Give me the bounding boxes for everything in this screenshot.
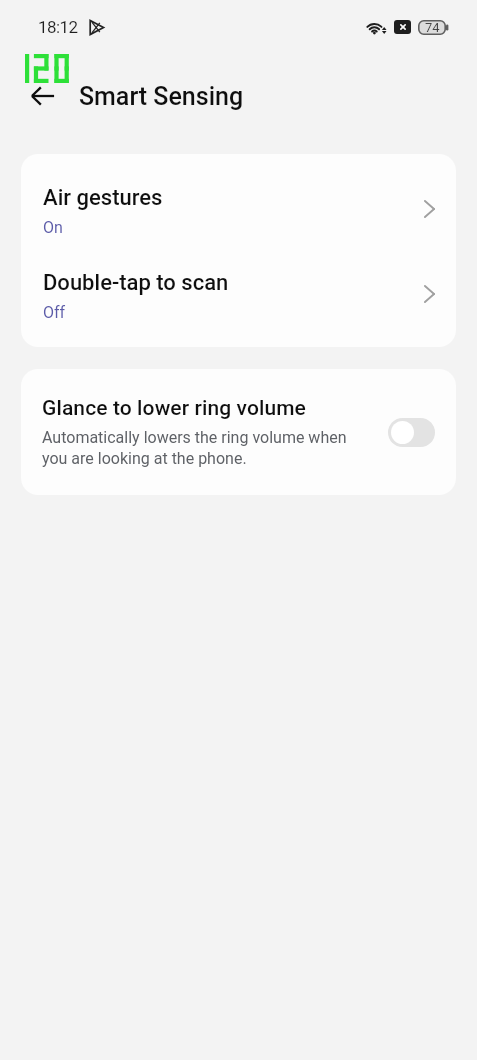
button[interactable]: Air gestures xyxy=(21,154,456,239)
staticText: On xyxy=(43,218,63,237)
button[interactable]: Back xyxy=(22,75,64,117)
staticText: Air gestures xyxy=(43,185,163,211)
staticText: Glance to lower ring volume xyxy=(42,396,306,421)
staticText: Smart Sensing xyxy=(79,82,244,111)
staticText: 74 xyxy=(425,20,440,35)
button[interactable]: Glance to lower ring volume xyxy=(21,369,456,495)
button[interactable]: Glance to lower ring volume toggle xyxy=(388,418,435,447)
button[interactable]: Double-tap to scan xyxy=(21,239,456,347)
staticText: Off xyxy=(43,303,66,322)
staticText: Double-tap to scan xyxy=(43,270,229,296)
staticText: 18:12 xyxy=(38,17,78,37)
staticText: Automatically lowers the ring volume whe… xyxy=(42,428,347,468)
